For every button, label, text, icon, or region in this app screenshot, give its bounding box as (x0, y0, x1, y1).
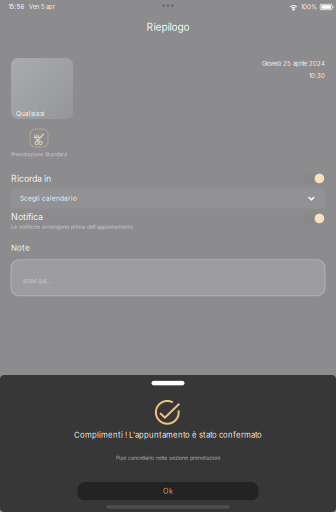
staticText: 15:56 (8, 3, 24, 10)
button[interactable]: Attiva (304, 212, 325, 224)
staticText: Ok (163, 487, 173, 495)
staticText: Ven 5 apr (29, 3, 55, 10)
staticText: scrivi qui... (23, 278, 52, 285)
staticText: 100% (301, 3, 317, 11)
staticText: Complimenti ! L'appuntamento è stato con… (74, 430, 262, 440)
button[interactable]: Ok (77, 482, 258, 500)
staticText: Puoi cancellarlo nella sezione prenotazi… (116, 455, 220, 461)
staticText: Le notifiche avvengono prima dell'appunt… (11, 224, 133, 230)
staticText: Prenotazione Standard (11, 151, 67, 157)
staticText: Note (11, 243, 30, 253)
staticText: Scegli calendario (20, 195, 77, 202)
staticText: Qualsiasi (16, 110, 45, 117)
button[interactable]: Scegli calendario (10, 188, 326, 208)
staticText: Riepilogo (146, 21, 189, 33)
staticText: Giovedì 25 aprile 2024 (262, 60, 325, 67)
staticText: Ricorda in (11, 173, 51, 184)
staticText: 10:30 (309, 72, 325, 80)
staticText: Notifica (11, 211, 43, 222)
button[interactable]: Attiva (304, 172, 325, 184)
